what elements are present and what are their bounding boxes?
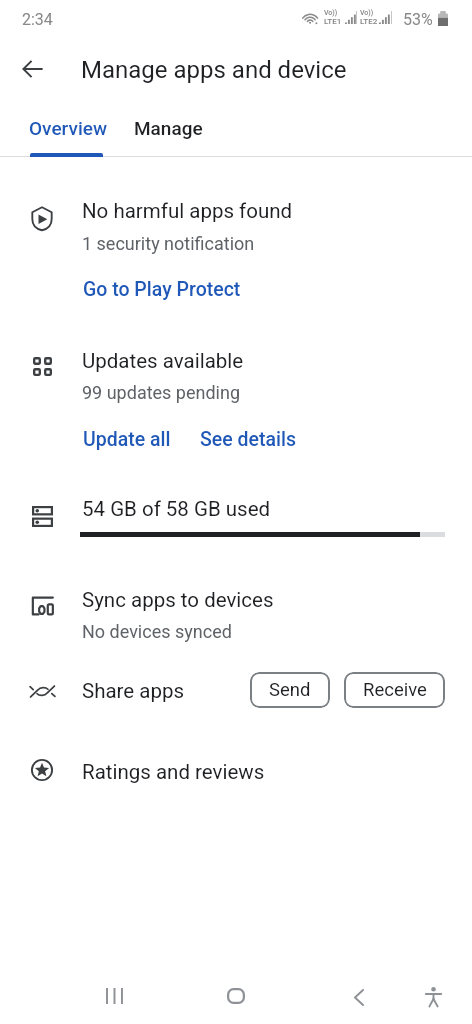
staticText: Share apps — [82, 679, 185, 703]
staticText: 54 GB of 58 GB used — [82, 497, 271, 521]
button[interactable]: Manage — [130, 105, 206, 151]
button[interactable]: Accessibility — [409, 973, 457, 1021]
button[interactable]: See details — [188, 422, 308, 457]
button[interactable]: Send — [250, 672, 330, 708]
staticText: Go to Play Protect — [83, 278, 241, 301]
staticText: Update all — [83, 428, 171, 451]
staticText: LTE2 — [360, 17, 378, 26]
staticText: LTE1 — [324, 17, 342, 26]
staticText: Overview — [29, 117, 108, 139]
staticText: Manage — [134, 117, 203, 139]
button[interactable]: Back — [11, 47, 55, 91]
staticText: No harmful apps found — [82, 199, 293, 223]
button[interactable]: Receive — [344, 672, 445, 708]
button[interactable]: Sync apps to devices — [18, 582, 66, 630]
button[interactable]: Play Protect — [18, 194, 66, 242]
button[interactable]: Share apps — [18, 667, 66, 715]
button[interactable]: Ratings and reviews — [18, 746, 66, 794]
button[interactable]: Recent apps — [89, 972, 137, 1020]
staticText: Vo)) — [324, 9, 338, 17]
staticText: Receive — [363, 679, 427, 701]
button[interactable]: Storage — [18, 492, 66, 540]
staticText: 1 security notification — [82, 233, 255, 254]
staticText: 99 updates pending — [82, 382, 241, 403]
button[interactable]: Back — [335, 973, 383, 1021]
button[interactable]: Go to Play Protect — [71, 272, 253, 307]
staticText: 53% — [403, 10, 433, 29]
staticText: Manage apps and device — [81, 56, 347, 84]
staticText: Send — [269, 679, 311, 701]
staticText: 2:34 — [22, 10, 53, 29]
button[interactable]: Home — [212, 972, 260, 1020]
button[interactable]: Update all — [71, 422, 183, 457]
staticText: Sync apps to devices — [82, 588, 274, 612]
staticText: No devices synced — [82, 621, 232, 642]
button[interactable]: Overview — [6, 105, 130, 151]
staticText: Vo)) — [360, 9, 374, 17]
staticText: Updates available — [82, 349, 244, 373]
staticText: Ratings and reviews — [82, 760, 265, 784]
button[interactable]: Updates available — [18, 342, 66, 390]
staticText: See details — [200, 428, 296, 451]
